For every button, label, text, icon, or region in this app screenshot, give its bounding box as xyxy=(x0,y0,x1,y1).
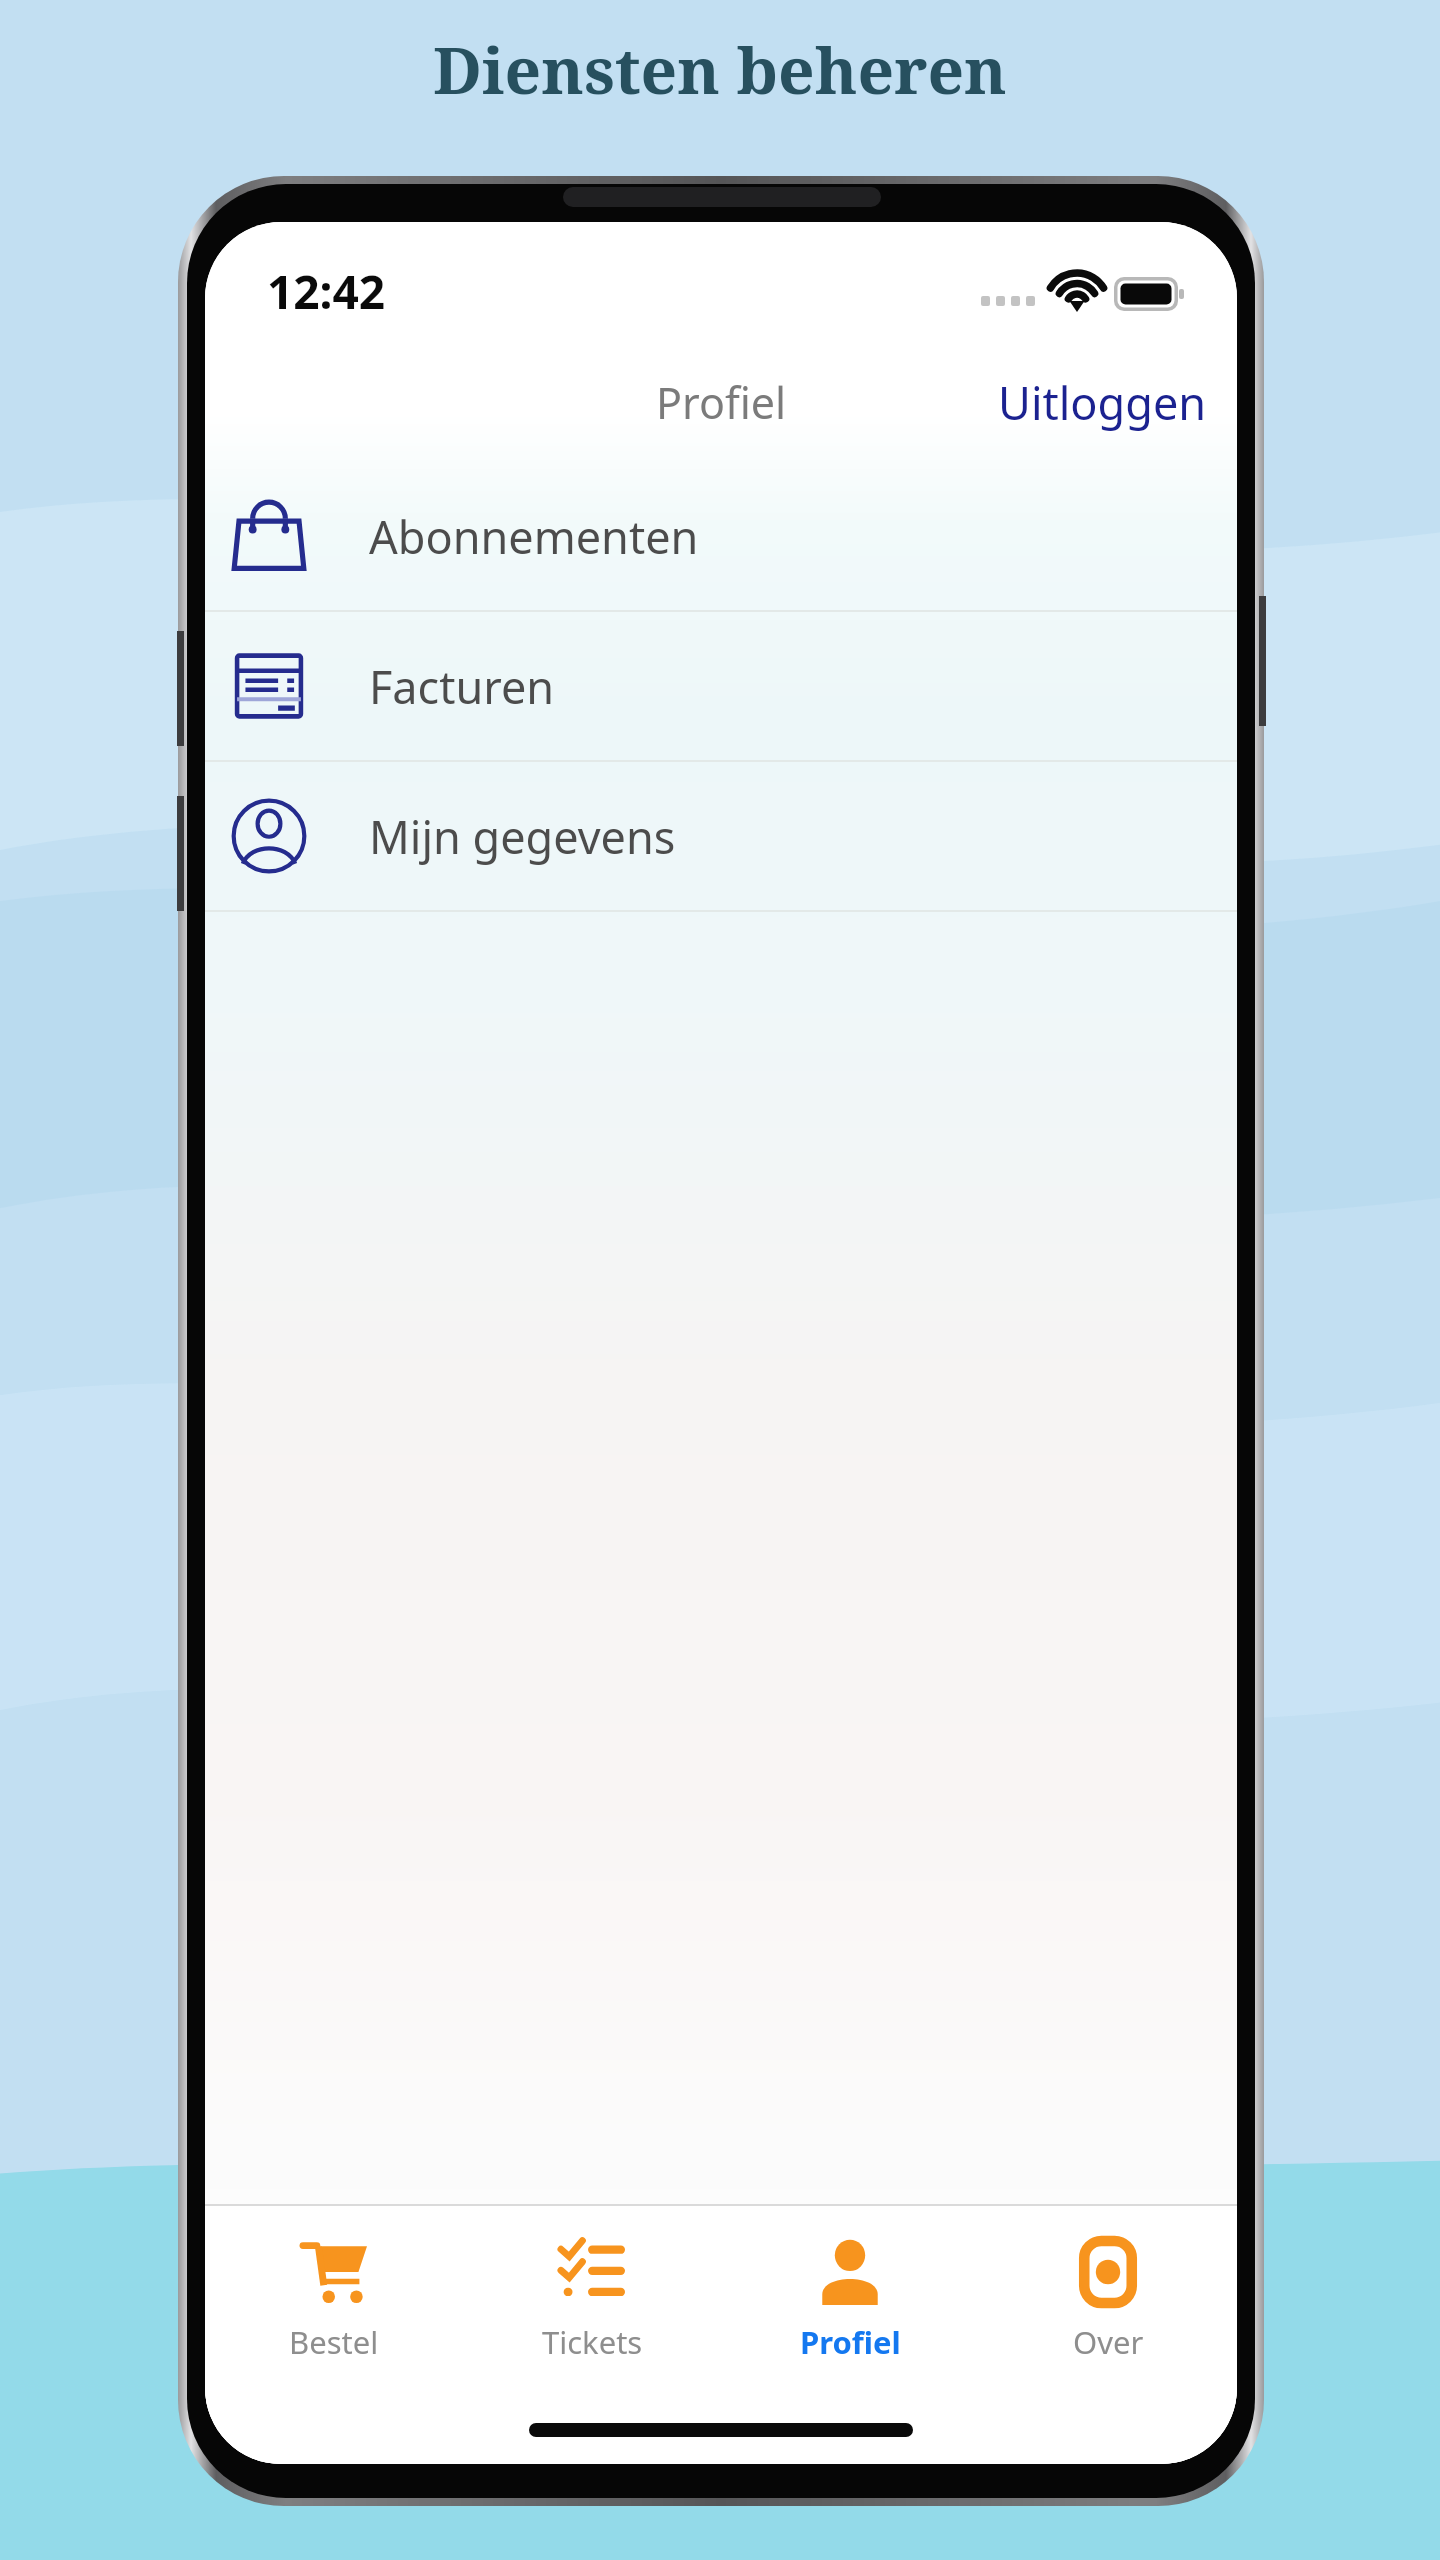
button[interactable]: Uitloggen xyxy=(968,358,1237,447)
button[interactable]: Mijn gegevens xyxy=(205,762,1237,910)
staticText: Mijn gegevens xyxy=(369,806,676,867)
button[interactable]: Bestel xyxy=(205,2206,463,2396)
button[interactable]: Abonnementen xyxy=(205,462,1237,610)
staticText: 12:42 xyxy=(267,260,386,323)
staticText: Diensten beheren xyxy=(433,26,1007,113)
button[interactable]: Facturen xyxy=(205,612,1237,760)
button[interactable]: Over xyxy=(979,2206,1237,2396)
staticText: Bestel xyxy=(289,2321,379,2363)
button[interactable]: Profiel xyxy=(721,2206,979,2396)
button[interactable]: Profiel xyxy=(630,359,813,446)
staticText: Over xyxy=(1073,2321,1144,2363)
staticText: Profiel xyxy=(800,2321,901,2363)
staticText: Profiel xyxy=(656,373,787,432)
staticText: Tickets xyxy=(542,2321,643,2363)
staticText: Abonnementen xyxy=(369,506,699,567)
staticText: Uitloggen xyxy=(998,372,1207,433)
button[interactable]: Tickets xyxy=(463,2206,721,2396)
staticText: Facturen xyxy=(369,656,555,717)
